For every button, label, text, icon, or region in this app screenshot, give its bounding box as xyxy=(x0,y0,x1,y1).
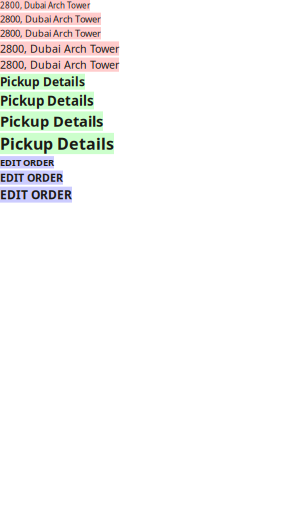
staticText: Pickup Details xyxy=(0,74,85,90)
staticText: Pickup Details xyxy=(0,111,103,131)
staticText: 2800, Dubai Arch Tower xyxy=(0,41,119,56)
staticText: EDIT ORDER xyxy=(0,170,63,185)
staticText: EDIT ORDER xyxy=(0,187,72,203)
staticText: EDIT ORDER xyxy=(0,156,54,168)
staticText: 2800, Dubai Arch Tower xyxy=(0,0,90,11)
staticText: 2800, Dubai Arch Tower xyxy=(0,58,119,72)
staticText: Pickup Details xyxy=(0,92,94,109)
staticText: Pickup Details xyxy=(0,133,114,154)
staticText: 2800, Dubai Arch Tower xyxy=(0,13,101,25)
staticText: 2800, Dubai Arch Tower xyxy=(0,27,101,39)
